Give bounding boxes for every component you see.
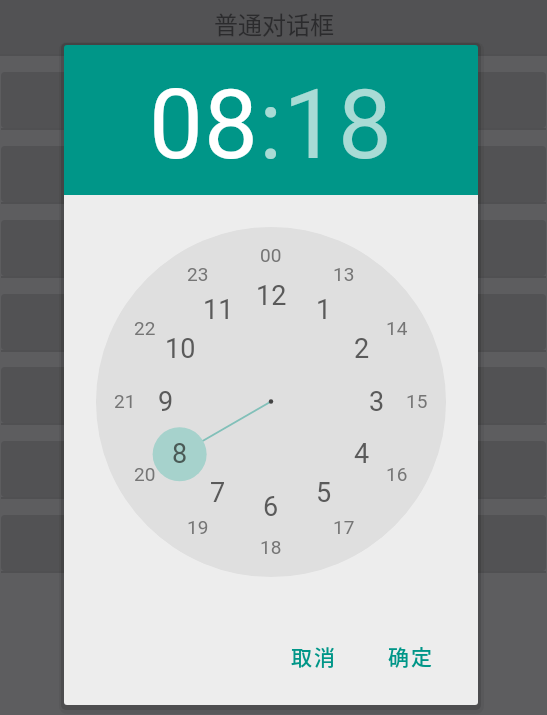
button[interactable]: 1 xyxy=(299,292,349,328)
button[interactable] xyxy=(1,146,546,202)
staticText: 2 xyxy=(354,333,370,365)
staticText: 18 xyxy=(260,536,282,558)
staticText: 13 xyxy=(333,263,355,285)
button[interactable]: 13 xyxy=(319,259,369,289)
button[interactable] xyxy=(1,220,546,276)
staticText: 21 xyxy=(114,390,136,412)
button[interactable]: 7 xyxy=(193,475,243,511)
staticText: 17 xyxy=(333,516,355,538)
button[interactable]: 21 xyxy=(100,386,150,416)
button[interactable]: 20 xyxy=(120,459,170,489)
staticText: 08:18 xyxy=(149,69,394,182)
button[interactable]: 00 xyxy=(246,240,296,270)
button[interactable]: 22 xyxy=(120,313,170,343)
button[interactable]: 8 xyxy=(155,436,205,472)
staticText: 22 xyxy=(134,317,156,339)
staticText: 4 xyxy=(354,438,370,470)
staticText: 11 xyxy=(203,294,234,326)
button[interactable]: 9 xyxy=(141,384,191,420)
button[interactable] xyxy=(1,72,546,128)
button[interactable] xyxy=(1,441,546,497)
button[interactable]: 确定 xyxy=(367,632,455,680)
staticText: 16 xyxy=(386,463,408,485)
staticText: 9 xyxy=(158,386,174,418)
staticText: 12 xyxy=(256,280,287,312)
staticText: 确定 xyxy=(388,641,434,671)
button[interactable]: 19 xyxy=(173,512,223,542)
staticText: 7 xyxy=(210,477,226,509)
button[interactable]: 3 xyxy=(352,384,402,420)
staticText: 14 xyxy=(386,317,408,339)
button[interactable] xyxy=(1,367,546,423)
button[interactable]: 11 xyxy=(193,292,243,328)
button[interactable]: 17 xyxy=(319,512,369,542)
staticText: 23 xyxy=(187,263,209,285)
staticText: 3 xyxy=(369,386,385,418)
button[interactable]: 5 xyxy=(299,475,349,511)
button[interactable]: 23 xyxy=(173,259,223,289)
button[interactable] xyxy=(1,515,546,571)
staticText: 00 xyxy=(260,244,282,266)
button[interactable]: 取消 xyxy=(270,632,358,680)
button[interactable]: 16 xyxy=(372,459,422,489)
staticText: 20 xyxy=(134,463,156,485)
button[interactable]: 14 xyxy=(372,313,422,343)
button[interactable]: 12 xyxy=(246,278,296,314)
staticText: 10 xyxy=(165,333,196,365)
staticText: 6 xyxy=(263,491,279,523)
staticText: 1 xyxy=(316,294,332,326)
staticText: 15 xyxy=(406,390,428,412)
button[interactable] xyxy=(1,294,546,350)
button[interactable]: 18 xyxy=(246,532,296,562)
button[interactable]: 2 xyxy=(337,331,387,367)
staticText: 普通对话框 xyxy=(214,6,334,41)
staticText: 19 xyxy=(187,516,209,538)
staticText: 取消 xyxy=(291,641,337,671)
staticText: 5 xyxy=(316,477,332,509)
staticText: 8 xyxy=(172,438,188,470)
button[interactable]: 10 xyxy=(155,331,205,367)
button[interactable]: 6 xyxy=(246,489,296,525)
button[interactable]: 15 xyxy=(392,386,442,416)
button[interactable]: 4 xyxy=(337,436,387,472)
